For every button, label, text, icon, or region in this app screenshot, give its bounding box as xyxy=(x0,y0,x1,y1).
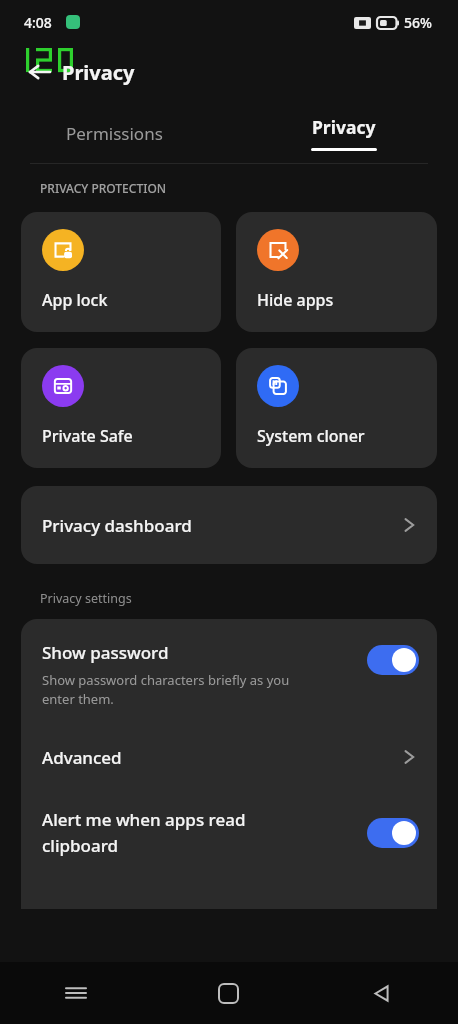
staticText: Alert me when apps read clipboard xyxy=(42,808,357,857)
button[interactable]: Hide apps xyxy=(236,212,437,332)
button[interactable]: Recents xyxy=(0,962,152,1024)
staticText: PRIVACY PROTECTION xyxy=(40,180,167,196)
staticText: App lock xyxy=(42,289,108,311)
staticText: Privacy xyxy=(62,59,135,86)
staticText: Privacy dashboard xyxy=(42,514,402,537)
button[interactable]: Home xyxy=(152,962,305,1024)
button[interactable]: Alert me when apps read clipboard xyxy=(21,790,437,875)
button[interactable]: System cloner xyxy=(236,348,437,468)
staticText: 4:08 xyxy=(24,13,52,32)
button[interactable]: Back xyxy=(18,50,62,94)
button[interactable]: Back xyxy=(305,962,458,1024)
button[interactable]: Private Safe xyxy=(21,348,221,468)
staticText: Private Safe xyxy=(42,425,133,447)
staticText: Privacy xyxy=(312,115,376,139)
staticText: Privacy settings xyxy=(40,590,132,607)
staticText: Permissions xyxy=(66,122,163,145)
button[interactable]: Advanced xyxy=(21,724,437,790)
button[interactable]: App lock xyxy=(21,212,221,332)
staticText: Show password characters briefly as you … xyxy=(42,671,290,708)
button[interactable]: Privacy dashboard xyxy=(21,486,437,564)
button[interactable]: Permissions xyxy=(0,102,229,164)
staticText: Show password xyxy=(42,641,169,664)
button[interactable]: Toggle xyxy=(367,645,419,675)
staticText: System cloner xyxy=(257,425,365,447)
button[interactable]: Privacy xyxy=(229,102,458,164)
staticText: Advanced xyxy=(42,746,402,769)
staticText: Hide apps xyxy=(257,289,334,311)
button[interactable]: Toggle xyxy=(367,818,419,848)
button[interactable]: Show password xyxy=(21,619,437,724)
staticText: 56% xyxy=(404,13,432,32)
